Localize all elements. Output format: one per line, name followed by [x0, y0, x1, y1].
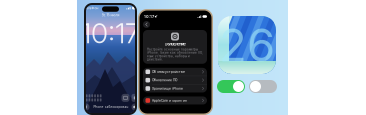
button[interactable]: Об этом устройстве: [143, 68, 207, 76]
staticText: AppleCare и гарантия: [152, 99, 187, 102]
button[interactable]: Camera: [131, 103, 138, 110]
button[interactable]: AppleCare и гарантия: [143, 96, 207, 104]
staticText: Об этом устройстве: [152, 70, 185, 74]
button[interactable]: Toggle off: [249, 80, 277, 93]
staticText: 26: [219, 18, 275, 72]
staticText: Настройте основные параметры iPhone, так…: [147, 48, 203, 61]
staticText: 10:17: [81, 16, 140, 50]
staticText: iPhone заблокирован: [92, 105, 128, 109]
button[interactable]: Обновление ПО: [143, 76, 207, 84]
staticText: 10:17: [144, 14, 154, 19]
button[interactable]: Volume: [131, 94, 138, 102]
staticText: Обновление: [164, 42, 185, 46]
staticText: МегаФон: [83, 6, 98, 10]
button[interactable]: Media: [121, 94, 129, 102]
staticText: Хранилище iPhone: [152, 87, 183, 90]
button[interactable]: Flashlight: [82, 103, 89, 110]
button[interactable]: Back: [143, 21, 150, 28]
button[interactable]: Toggle on: [217, 80, 245, 93]
staticText: Вт, 15 июля: [101, 13, 119, 17]
staticText: Обновление ПО: [152, 78, 177, 82]
button[interactable]: Хранилище iPhone: [143, 84, 207, 92]
